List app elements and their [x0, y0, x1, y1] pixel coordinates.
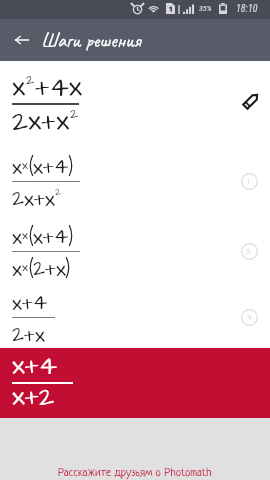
button[interactable]: Back	[7, 25, 37, 55]
staticText: x+4	[12, 347, 58, 385]
staticText: x+4	[33, 222, 69, 251]
staticText: x	[12, 68, 26, 107]
staticText: 18:10	[236, 3, 258, 15]
staticText: x	[12, 152, 22, 181]
staticText: Шаги решения	[41, 28, 141, 53]
staticText: 2	[26, 70, 35, 89]
button[interactable]: Расскажите друзьям о Photomath	[0, 418, 270, 480]
staticText: 2	[55, 185, 62, 200]
staticText: 2x+x	[12, 102, 70, 141]
staticText: +4x	[35, 68, 82, 107]
staticText: 2	[246, 245, 252, 258]
staticText: 2+x	[33, 254, 66, 283]
staticText: x+2	[12, 378, 55, 416]
button[interactable]: 3	[236, 304, 262, 330]
staticText: 2	[70, 104, 79, 123]
staticText: 1	[248, 175, 250, 188]
button[interactable]: Edit	[238, 88, 264, 114]
staticText: x+4	[33, 152, 69, 181]
staticText: x	[22, 227, 28, 245]
staticText: 3	[247, 311, 252, 324]
staticText: 2+x	[12, 320, 45, 349]
staticText: x	[12, 222, 22, 251]
staticText: x	[22, 157, 28, 175]
staticText: 35%	[199, 4, 212, 13]
staticText: x	[22, 259, 28, 277]
button[interactable]: 1	[236, 168, 262, 194]
staticText: 2x+x	[12, 184, 55, 213]
button[interactable]: 2	[236, 238, 262, 264]
staticText: x	[12, 254, 22, 283]
staticText: Расскажите друзьям о Photomath	[58, 467, 212, 480]
staticText: x+4	[12, 288, 48, 317]
